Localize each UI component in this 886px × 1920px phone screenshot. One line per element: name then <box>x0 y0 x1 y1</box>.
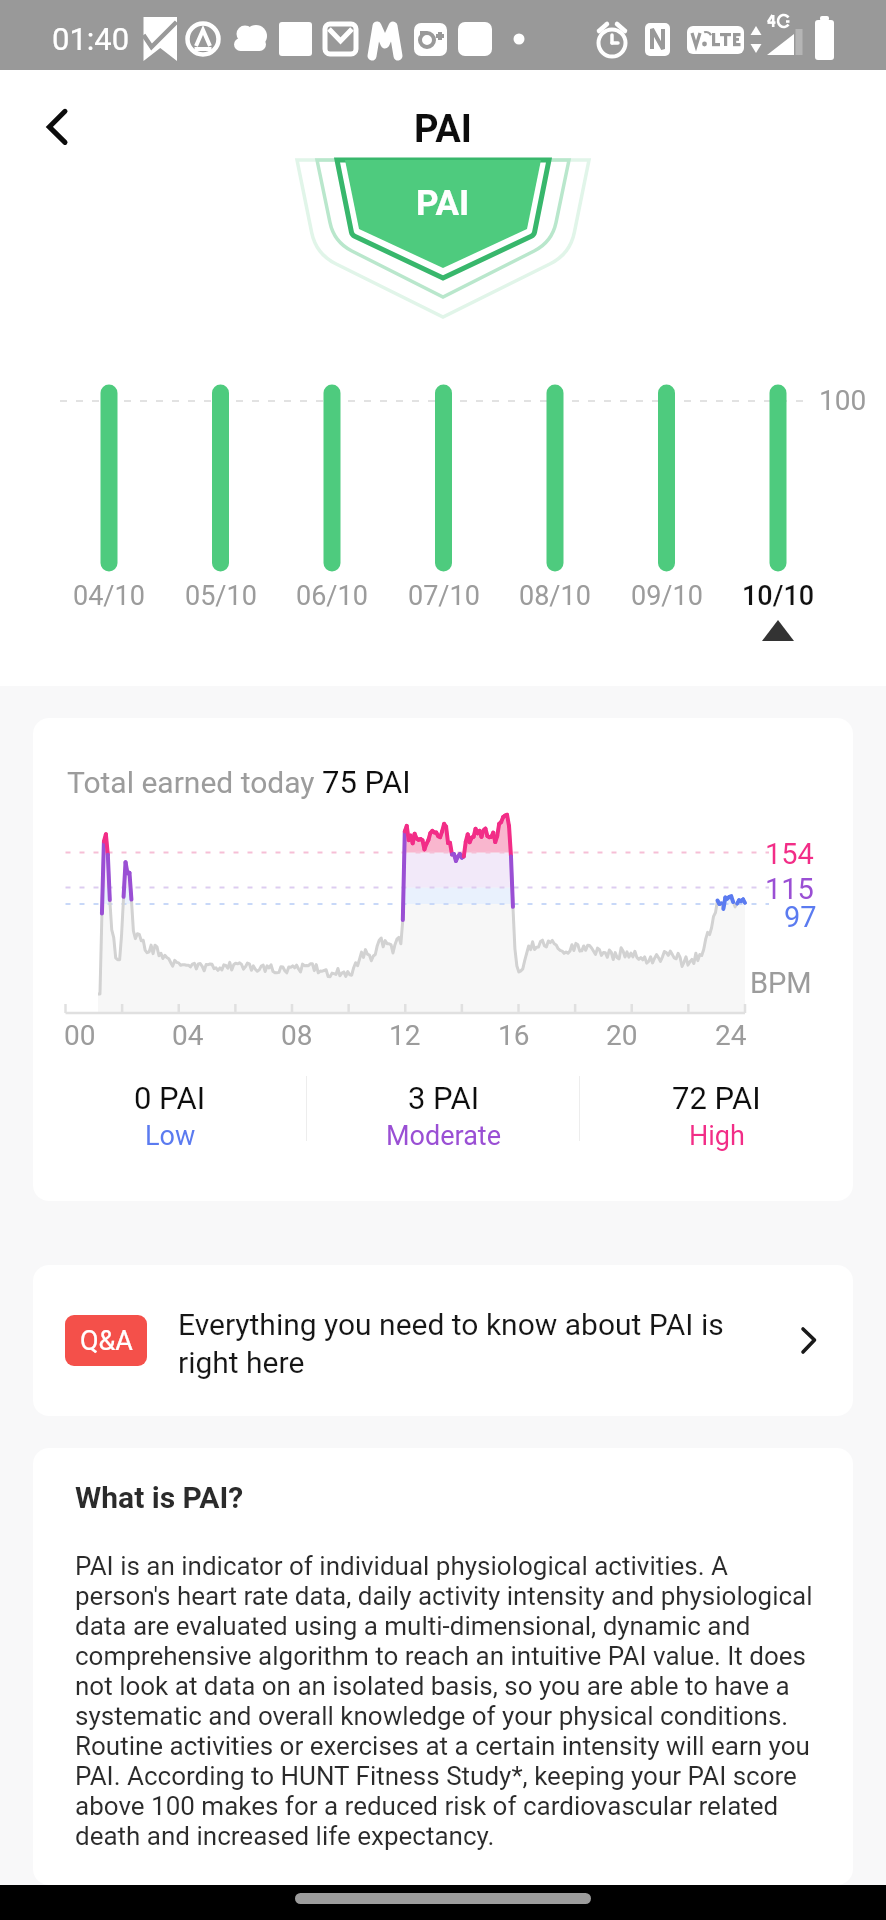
button[interactable]: Q&A <box>33 1265 853 1416</box>
staticText: 72 PAI <box>672 1080 761 1116</box>
staticText: 0 PAI <box>134 1080 206 1116</box>
staticText: PAI <box>416 183 470 224</box>
staticText: 08/10 <box>519 580 591 612</box>
staticText: What is PAI? <box>75 1480 244 1515</box>
staticText: 100 <box>819 384 867 417</box>
staticText: 115 <box>765 872 814 906</box>
button[interactable]: 72 PAI <box>580 1080 853 1152</box>
staticText: 12 <box>389 1019 421 1052</box>
staticText: BPM <box>750 966 812 1000</box>
staticText: 06/10 <box>296 580 368 612</box>
staticText: High <box>689 1120 745 1152</box>
staticText: 3 PAI <box>408 1080 480 1116</box>
staticText: PAI is an indicator of individual physio… <box>75 1551 817 1851</box>
staticText: 75 PAI <box>322 764 411 800</box>
staticText: 09/10 <box>631 580 703 612</box>
staticText: 00 <box>64 1019 96 1052</box>
staticText: 04 <box>172 1019 204 1052</box>
staticText: 97 <box>784 900 817 934</box>
staticText: Low <box>145 1120 196 1152</box>
staticText: Moderate <box>386 1120 501 1152</box>
staticText: 01:40 <box>52 21 130 57</box>
staticText: 20 <box>606 1019 638 1052</box>
staticText: Everything you need to know about PAI is… <box>178 1307 770 1381</box>
staticText: 04/10 <box>73 580 145 612</box>
staticText: 05/10 <box>185 580 257 612</box>
staticText: 08 <box>281 1019 313 1052</box>
staticText: 16 <box>498 1019 530 1052</box>
staticText: 07/10 <box>408 580 480 612</box>
button[interactable]: Back <box>18 86 98 166</box>
staticText: PAI <box>414 107 472 152</box>
button[interactable]: 0 PAI <box>33 1080 307 1152</box>
staticText: Total earned today <box>67 765 322 800</box>
staticText: Q&A <box>80 1325 133 1357</box>
staticText: 10/10 <box>742 580 815 612</box>
staticText: 154 <box>765 837 814 871</box>
staticText: 24 <box>715 1019 747 1052</box>
button[interactable]: Open Q and A <box>785 1317 833 1365</box>
button[interactable]: 3 PAI <box>307 1080 580 1152</box>
